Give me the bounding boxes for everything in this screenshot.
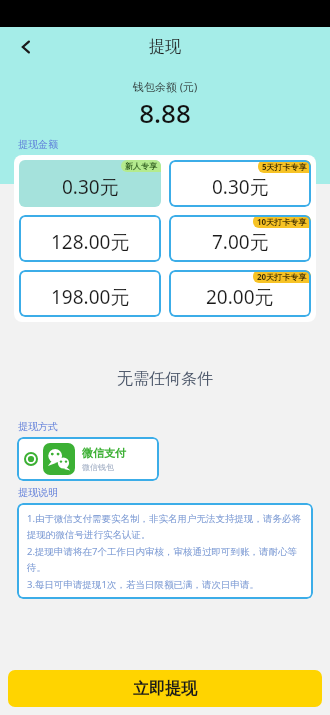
button[interactable]: 立即提现 xyxy=(8,670,322,707)
button[interactable]: 128.00元 xyxy=(19,215,161,262)
staticText: 提现金额 xyxy=(18,138,58,151)
staticText: 0.30元 xyxy=(212,174,269,200)
staticText: 微信支付 xyxy=(82,446,126,460)
staticText: 8.88 xyxy=(0,95,330,130)
staticText: 7.00元 xyxy=(212,229,269,255)
staticText: 无需任何条件 xyxy=(0,369,330,389)
button[interactable]: 10天打卡专享 xyxy=(169,215,311,262)
button[interactable]: Back xyxy=(10,31,42,63)
button[interactable]: 微信支付 xyxy=(17,437,159,481)
staticText: 微信钱包 xyxy=(82,462,114,472)
staticText: 5天打卡专享 xyxy=(262,161,307,172)
staticText: 198.00元 xyxy=(51,284,130,310)
staticText: 20.00元 xyxy=(206,284,274,310)
button[interactable]: 5天打卡专享 xyxy=(169,160,311,207)
staticText: 1.由于微信支付需要实名制，非实名用户无法支持提现，请务必将提现的微信号进行实名… xyxy=(27,512,303,590)
staticText: 钱包余额 (元) xyxy=(0,79,330,94)
staticText: 新人专享 xyxy=(125,161,157,171)
staticText: 20天打卡专享 xyxy=(257,271,307,282)
staticText: 10天打卡专享 xyxy=(257,216,307,227)
staticText: 提现方式 xyxy=(18,420,58,433)
staticText: 立即提现 xyxy=(133,679,197,699)
button[interactable]: 198.00元 xyxy=(19,270,161,317)
button[interactable]: 20天打卡专享 xyxy=(169,270,311,317)
button[interactable]: 新人专享 xyxy=(19,160,161,207)
staticText: 0.30元 xyxy=(62,174,119,200)
staticText: 128.00元 xyxy=(51,229,130,255)
staticText: 提现说明 xyxy=(18,486,58,499)
staticText: 提现 xyxy=(149,37,181,57)
